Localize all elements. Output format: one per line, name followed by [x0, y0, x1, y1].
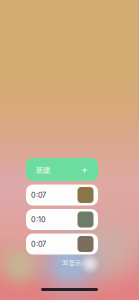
button[interactable]: 30 显示 › — [26, 258, 98, 267]
staticText: 0:10 — [31, 215, 46, 224]
staticText: 0:07 — [31, 191, 46, 199]
button[interactable]: 新建 — [26, 158, 98, 181]
button[interactable]: 0:07 — [26, 233, 98, 254]
button[interactable]: 0:10 — [26, 209, 98, 230]
staticText: 30 显示 › — [62, 258, 84, 267]
staticText: 新建 — [36, 164, 50, 175]
staticText: + — [81, 163, 88, 176]
button[interactable]: 0:07 — [26, 184, 98, 205]
staticText: 0:07 — [31, 240, 46, 248]
